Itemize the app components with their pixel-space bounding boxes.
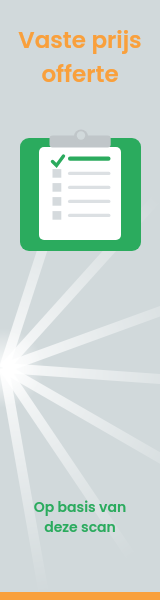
button[interactable]: Vaste prijs offerte — [0, 0, 160, 600]
staticText: Op basis van deze scan — [0, 497, 160, 537]
staticText: Vaste prijs offerte — [0, 24, 160, 90]
